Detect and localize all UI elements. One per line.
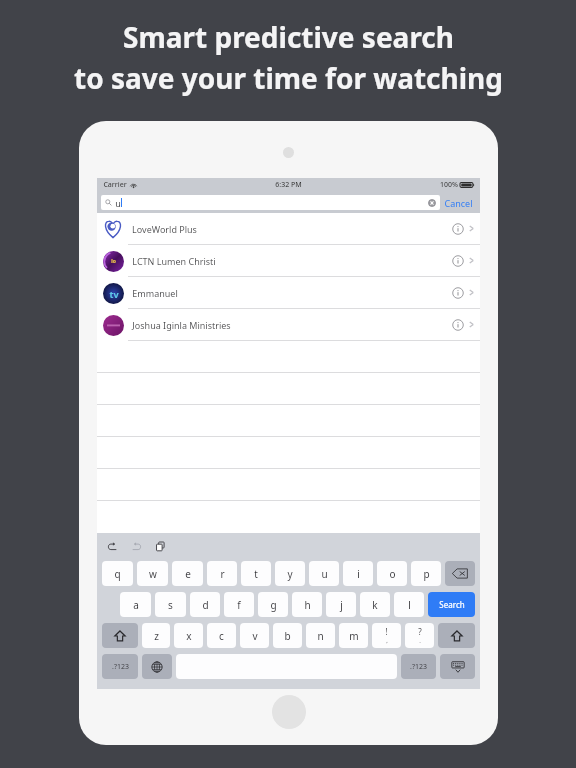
- staticText: k: [372, 598, 378, 612]
- button[interactable]: s: [155, 592, 186, 617]
- button[interactable]: !: [372, 623, 401, 648]
- staticText: t: [254, 567, 258, 581]
- button[interactable]: f: [224, 592, 254, 617]
- button[interactable]: Redo: [129, 539, 143, 553]
- staticText: p: [423, 567, 430, 581]
- button[interactable]: ?: [405, 623, 434, 648]
- button[interactable]: u: [309, 561, 339, 586]
- staticText: m: [349, 629, 359, 643]
- staticText: to save your time for watching: [74, 59, 503, 97]
- staticText: w: [149, 567, 157, 581]
- button[interactable]: t: [241, 561, 271, 586]
- staticText: .?123: [112, 662, 129, 672]
- button[interactable]: d: [190, 592, 220, 617]
- button[interactable]: Shift: [438, 623, 475, 648]
- button[interactable]: z: [142, 623, 170, 648]
- button[interactable]: Undo: [105, 539, 119, 553]
- staticText: u: [115, 197, 121, 209]
- button[interactable]: .?123: [401, 654, 436, 679]
- button[interactable]: Clear text: [428, 199, 436, 207]
- button[interactable]: q: [102, 561, 133, 586]
- button[interactable]: y: [275, 561, 305, 586]
- staticText: r: [220, 567, 225, 581]
- staticText: v: [252, 629, 258, 643]
- staticText: q: [114, 567, 121, 581]
- button[interactable]: o: [377, 561, 407, 586]
- button[interactable]: Backspace: [445, 561, 475, 586]
- staticText: Emmanuel: [132, 287, 178, 299]
- button[interactable]: LoveWorld Plus: [97, 213, 480, 244]
- staticText: Carrier: [103, 180, 127, 190]
- button[interactable]: r: [207, 561, 237, 586]
- staticText: Cancel: [444, 197, 473, 209]
- button[interactable]: e: [172, 561, 203, 586]
- staticText: a: [133, 598, 139, 612]
- staticText: LoveWorld Plus: [132, 223, 197, 235]
- staticText: i: [357, 567, 360, 581]
- staticText: lo: [111, 258, 116, 265]
- button[interactable]: p: [411, 561, 441, 586]
- staticText: LCTN Lumen Christi: [132, 255, 216, 267]
- button[interactable]: v: [240, 623, 269, 648]
- staticText: e: [185, 567, 191, 581]
- staticText: y: [287, 567, 293, 581]
- staticText: n: [317, 629, 324, 643]
- button[interactable]: k: [360, 592, 390, 617]
- staticText: d: [202, 598, 209, 612]
- staticText: s: [168, 598, 173, 612]
- button[interactable]: b: [273, 623, 302, 648]
- staticText: c: [219, 629, 224, 643]
- button[interactable]: Shift: [102, 623, 138, 648]
- staticText: h: [304, 598, 311, 612]
- button[interactable]: c: [207, 623, 236, 648]
- button[interactable]: g: [258, 592, 288, 617]
- button[interactable]: m: [339, 623, 368, 648]
- button[interactable]: lo: [97, 245, 480, 276]
- button[interactable]: .?123: [102, 654, 138, 679]
- staticText: g: [270, 598, 277, 612]
- button[interactable]: i: [343, 561, 373, 586]
- button[interactable]: Joshua Iginla Ministries: [97, 309, 480, 340]
- button[interactable]: tv: [97, 277, 480, 308]
- staticText: x: [186, 629, 192, 643]
- staticText: o: [389, 567, 396, 581]
- button[interactable]: j: [326, 592, 356, 617]
- button[interactable]: n: [306, 623, 335, 648]
- button[interactable]: Change keyboard: [142, 654, 172, 679]
- button[interactable]: More info about LCTN Lumen Christi: [452, 255, 464, 267]
- staticText: 100%: [440, 180, 458, 190]
- staticText: !: [385, 626, 388, 637]
- button[interactable]: h: [292, 592, 322, 617]
- button[interactable]: More info about Emmanuel: [452, 287, 464, 299]
- button[interactable]: Hide keyboard: [440, 654, 475, 679]
- button[interactable]: a: [120, 592, 151, 617]
- button[interactable]: Paste: [153, 539, 167, 553]
- button[interactable]: w: [137, 561, 168, 586]
- staticText: .: [419, 637, 421, 645]
- staticText: Smart predictive search: [123, 18, 454, 56]
- staticText: b: [284, 629, 291, 643]
- button[interactable]: More info about Joshua Iginla Ministries: [452, 319, 464, 331]
- staticText: l: [408, 598, 411, 612]
- staticText: f: [237, 598, 241, 612]
- staticText: ,: [386, 637, 388, 645]
- button[interactable]: More info about LoveWorld Plus: [452, 223, 464, 235]
- staticText: .?123: [410, 662, 427, 672]
- staticText: Joshua Iginla Ministries: [132, 319, 231, 331]
- button[interactable]: u: [101, 195, 440, 210]
- button[interactable]: Search: [428, 592, 475, 617]
- staticText: tv: [109, 288, 119, 300]
- staticText: u: [321, 567, 328, 581]
- button[interactable]: Cancel: [440, 194, 477, 212]
- staticText: ?: [418, 626, 422, 637]
- staticText: Search: [439, 599, 465, 610]
- button[interactable]: l: [394, 592, 424, 617]
- staticText: j: [340, 598, 343, 612]
- button[interactable]: x: [174, 623, 203, 648]
